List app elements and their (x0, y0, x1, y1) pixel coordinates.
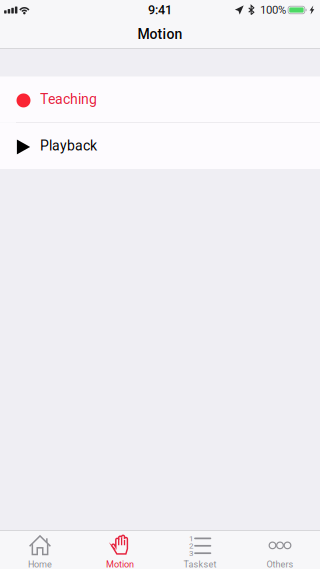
staticText: Motion (106, 559, 134, 569)
button[interactable]: Teaching (0, 76, 320, 122)
staticText: Motion (137, 26, 182, 42)
staticText: 9:41 (148, 3, 172, 17)
button[interactable]: Others (240, 530, 320, 569)
staticText: Teaching (40, 91, 97, 107)
button[interactable]: Motion (80, 530, 160, 569)
staticText: Others (266, 559, 293, 569)
button[interactable]: 1 (160, 530, 240, 569)
staticText: 3 (189, 548, 193, 558)
staticText: 2 (189, 541, 193, 550)
staticText: 1 (189, 534, 193, 543)
staticText: 100% (260, 3, 286, 17)
button[interactable]: Home (0, 530, 80, 569)
button[interactable]: Playback (0, 122, 320, 169)
staticText: Home (28, 559, 52, 569)
staticText: Playback (40, 137, 97, 154)
staticText: Taskset (183, 559, 216, 569)
